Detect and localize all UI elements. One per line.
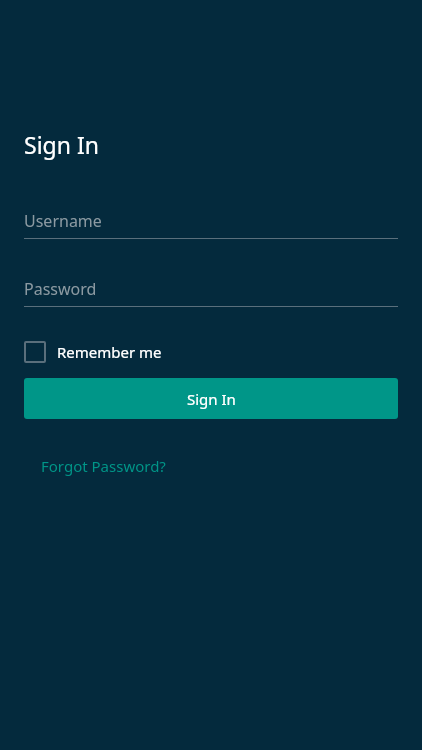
staticText: Remember me bbox=[57, 342, 162, 362]
button[interactable]: Forgot Password? bbox=[24, 452, 166, 480]
staticText: Username bbox=[24, 210, 102, 232]
button[interactable]: Username bbox=[24, 210, 398, 239]
button[interactable]: Remember me bbox=[24, 338, 162, 366]
staticText: Sign In bbox=[24, 129, 99, 160]
staticText: Forgot Password? bbox=[41, 456, 166, 476]
staticText: Password bbox=[24, 278, 97, 300]
button[interactable]: Sign In bbox=[24, 378, 398, 419]
staticText: Sign In bbox=[187, 389, 236, 409]
button[interactable]: Password bbox=[24, 278, 398, 307]
